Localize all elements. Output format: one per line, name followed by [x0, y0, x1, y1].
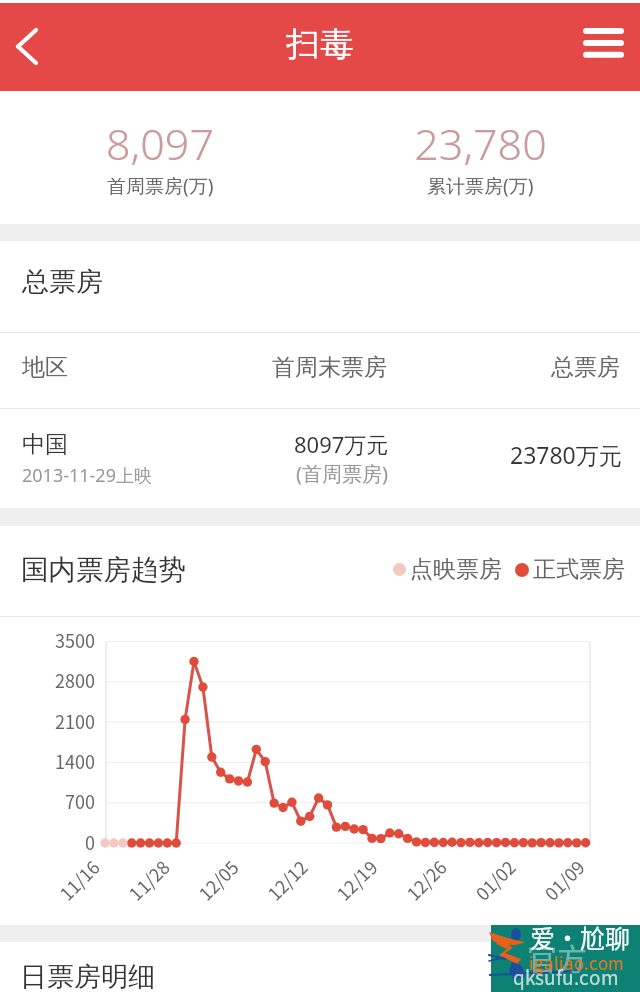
- staticText: 累计票房(万): [427, 173, 534, 199]
- staticText: 8,097: [106, 114, 214, 173]
- staticText: 2013-11-29上映: [22, 463, 152, 488]
- staticText: 8097万元: [294, 429, 389, 459]
- staticText: 首周票房(万): [107, 173, 214, 199]
- staticText: 首周末票房: [272, 353, 387, 382]
- button[interactable]: 日票房明细: [0, 942, 640, 992]
- staticText: 23780万元: [510, 439, 622, 470]
- staticText: (首周票房): [296, 460, 388, 487]
- button[interactable]: Menu: [568, 3, 640, 91]
- button[interactable]: 中国: [0, 409, 640, 508]
- staticText: 23,780: [414, 114, 547, 173]
- button[interactable]: Back: [0, 3, 56, 91]
- staticText: 国内票房趋势: [21, 553, 186, 588]
- staticText: 点映票房: [410, 555, 502, 584]
- staticText: 日票房明细: [20, 960, 155, 992]
- staticText: 中国: [22, 430, 68, 459]
- staticText: 地区: [22, 353, 68, 382]
- staticText: 总票房: [551, 353, 620, 382]
- staticText: 总票房: [22, 265, 103, 299]
- button[interactable]: 总票房: [0, 241, 640, 332]
- staticText: 扫毒: [286, 23, 354, 66]
- staticText: 正式票房: [533, 555, 625, 584]
